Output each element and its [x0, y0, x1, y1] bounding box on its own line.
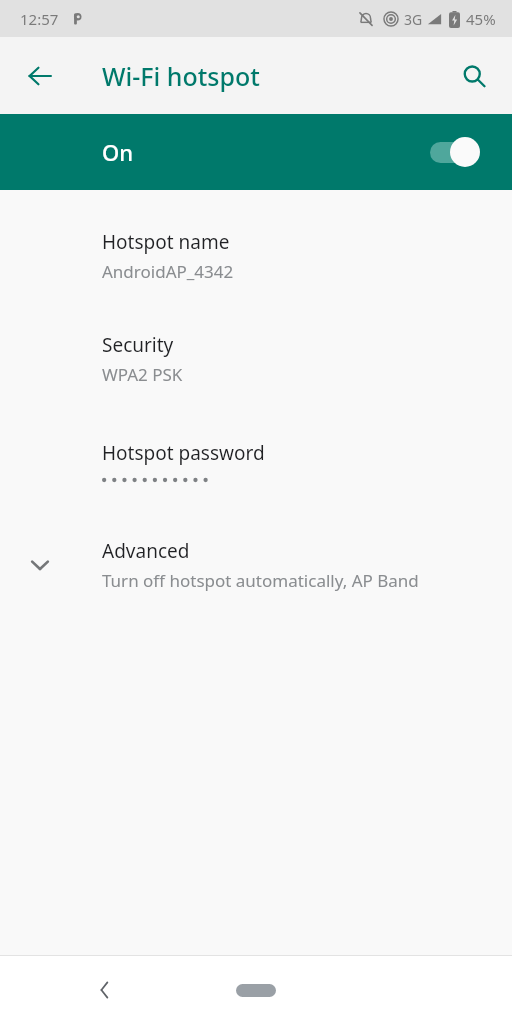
staticText: On — [102, 137, 134, 167]
button[interactable]: Hotspot name — [0, 204, 512, 307]
button[interactable]: Security — [0, 307, 512, 410]
staticText: Security — [102, 332, 174, 358]
button[interactable]: Hotspot password — [0, 410, 512, 513]
staticText: Advanced — [102, 538, 190, 564]
button[interactable]: Advanced — [0, 513, 512, 616]
button[interactable]: Home — [226, 976, 286, 1004]
staticText: Turn off hotspot automatically, AP Band — [102, 569, 419, 592]
staticText: Hotspot password — [102, 440, 265, 466]
staticText: Wi-Fi hotspot — [102, 59, 260, 93]
staticText: 12:57 — [20, 9, 59, 29]
button[interactable]: On — [0, 114, 512, 190]
staticText: 45% — [466, 9, 496, 29]
staticText: 3G — [404, 10, 423, 29]
button[interactable]: Back — [16, 52, 64, 100]
staticText: WPA2 PSK — [102, 363, 183, 386]
staticText: AndroidAP_4342 — [102, 260, 234, 283]
staticText: Hotspot name — [102, 229, 230, 255]
button[interactable]: Back — [82, 967, 128, 1013]
button[interactable]: Search — [450, 52, 498, 100]
